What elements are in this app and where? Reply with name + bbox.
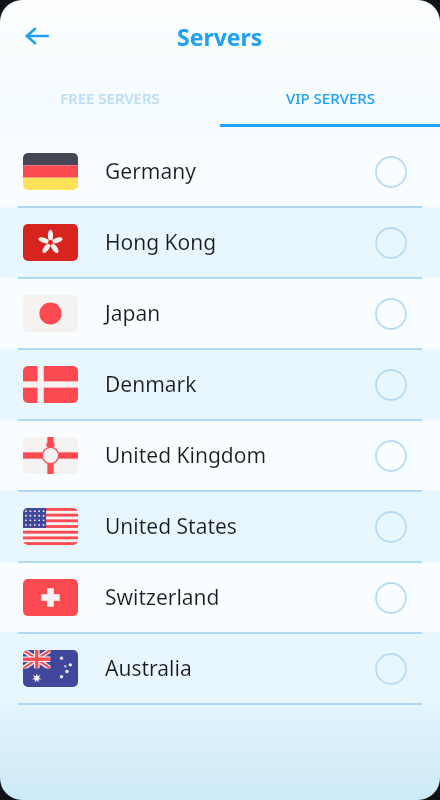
button[interactable]: Japan [0,279,440,348]
button[interactable]: Select Australia [368,646,414,692]
button[interactable]: Select Japan [368,291,414,337]
button[interactable]: United Kingdom [0,421,440,490]
button[interactable]: Germany [0,137,440,206]
staticText: Japan [105,299,161,328]
button[interactable]: United States [0,492,440,561]
staticText: United Kingdom [105,441,267,470]
staticText: Servers [177,21,263,52]
button[interactable]: Select United Kingdom [368,433,414,479]
button[interactable]: Back [14,13,60,59]
staticText: Switzerland [105,583,220,612]
button[interactable]: Select United States [368,504,414,550]
button[interactable]: Select Denmark [368,362,414,408]
button[interactable]: Select Germany [368,149,414,195]
staticText: Germany [105,157,196,186]
staticText: Hong Kong [105,228,217,257]
button[interactable]: Select Switzerland [368,575,414,621]
staticText: United States [105,512,237,541]
button[interactable]: Denmark [0,350,440,419]
button[interactable]: Switzerland [0,563,440,632]
staticText: Denmark [105,370,197,399]
button[interactable]: Hong Kong [0,208,440,277]
button[interactable]: FREE SERVERS [0,72,220,124]
button[interactable]: VIP SERVERS [220,72,440,124]
staticText: VIP SERVERS [286,88,375,108]
button[interactable]: Select Hong Kong [368,220,414,266]
button[interactable]: Australia [0,634,440,703]
staticText: Australia [105,654,192,683]
staticText: FREE SERVERS [60,88,160,108]
